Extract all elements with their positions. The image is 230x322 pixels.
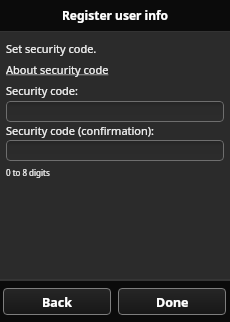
staticText: Done — [156, 294, 189, 311]
staticText: Security code: — [6, 83, 78, 98]
staticText: Back — [42, 294, 73, 311]
button[interactable]: About security code — [6, 62, 109, 77]
button[interactable] — [6, 101, 224, 122]
button[interactable] — [6, 140, 224, 161]
button[interactable]: Back — [3, 288, 111, 315]
staticText: Security code (confirmation): — [6, 123, 155, 138]
staticText: Register user info — [62, 7, 169, 23]
staticText: Set security code. — [6, 41, 97, 56]
button[interactable]: Done — [118, 288, 226, 315]
staticText: 0 to 8 digits — [6, 167, 50, 178]
